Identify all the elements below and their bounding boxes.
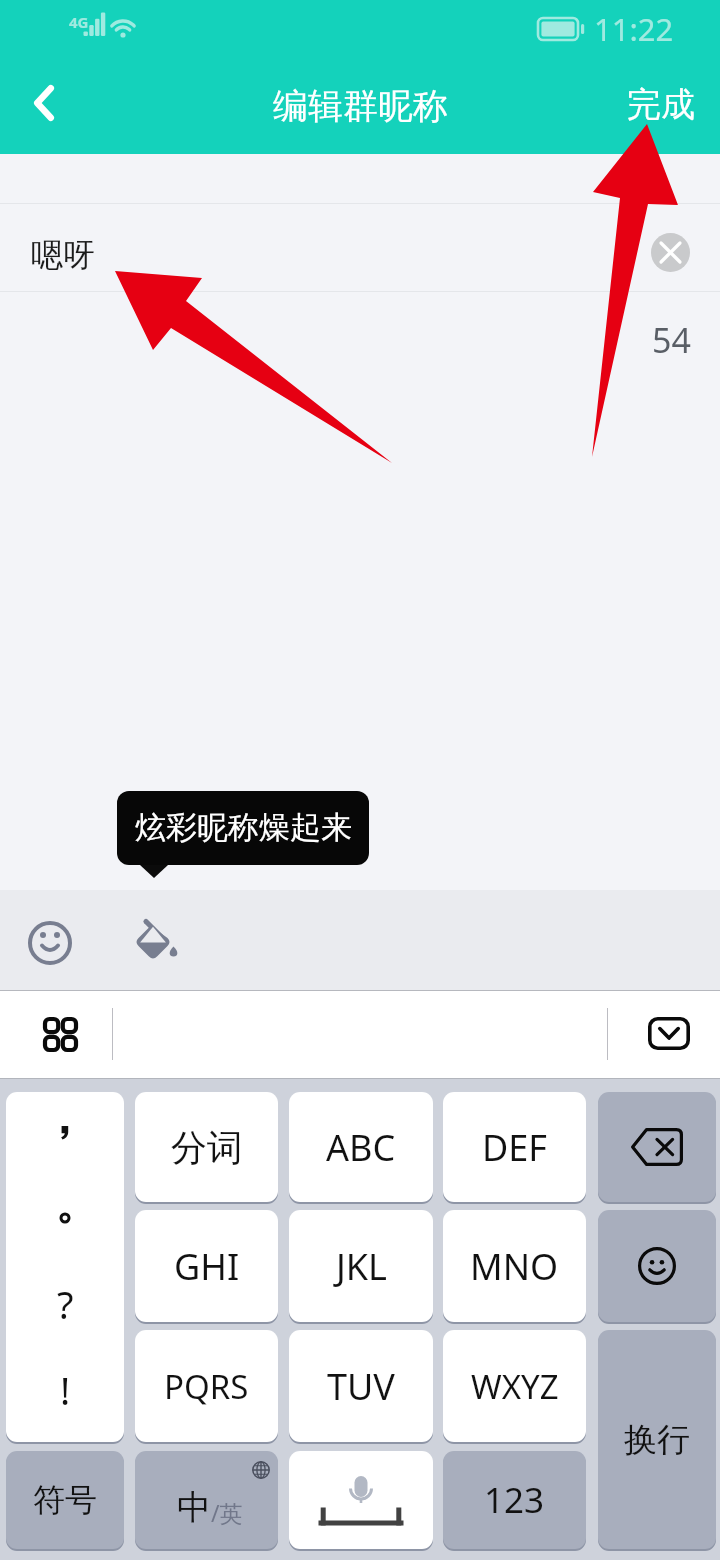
staticText: 换行 — [624, 1419, 690, 1461]
button[interactable]: 炫彩昵称燥起来 — [117, 791, 369, 865]
button[interactable]: 123 — [443, 1451, 586, 1549]
button[interactable]: Clear text — [651, 233, 690, 272]
button[interactable]: Keyboard layout — [33, 1010, 87, 1058]
button[interactable]: Emoji — [12, 890, 88, 990]
staticText: GHI — [174, 1242, 240, 1291]
staticText: ! — [60, 1364, 71, 1416]
staticText: 编辑群昵称 — [273, 84, 448, 128]
staticText: 4G — [69, 12, 89, 32]
staticText: 嗯呀 — [31, 235, 95, 275]
staticText: 完成 — [627, 83, 695, 126]
staticText: /英 — [211, 1497, 243, 1528]
button[interactable]: ABC — [289, 1092, 433, 1202]
button[interactable]: 换行 — [598, 1330, 716, 1549]
staticText: 符号 — [33, 1480, 97, 1520]
button[interactable]: Hide keyboard — [648, 1017, 690, 1050]
staticText: 分词 — [171, 1125, 243, 1170]
button[interactable] — [598, 1092, 716, 1202]
staticText: TUV — [327, 1362, 395, 1411]
staticText: 11:22 — [594, 8, 674, 50]
staticText: ? — [57, 1278, 74, 1330]
staticText: 中 — [177, 1486, 211, 1529]
button[interactable]: 完成 — [602, 60, 720, 154]
button[interactable]: JKL — [289, 1210, 433, 1322]
button[interactable]: PQRS — [135, 1330, 278, 1442]
button[interactable] — [289, 1451, 433, 1549]
button[interactable]: 分词 — [135, 1092, 278, 1202]
staticText: 炫彩昵称燥起来 — [135, 808, 352, 847]
staticText: 123 — [484, 1476, 545, 1524]
staticText: DEF — [482, 1123, 547, 1172]
staticText: WXYZ — [471, 1364, 559, 1409]
button[interactable]: ? — [6, 1092, 124, 1442]
staticText: PQRS — [164, 1364, 249, 1409]
staticText: ABC — [326, 1123, 396, 1172]
button[interactable]: WXYZ — [443, 1330, 586, 1442]
button[interactable]: 嗯呀 — [0, 204, 720, 291]
button[interactable]: GHI — [135, 1210, 278, 1322]
button[interactable]: 中 — [135, 1451, 278, 1549]
staticText: MNO — [470, 1242, 559, 1291]
button[interactable]: DEF — [443, 1092, 586, 1202]
staticText: 54 — [652, 317, 691, 363]
button[interactable]: 符号 — [6, 1451, 124, 1549]
staticText: JKL — [336, 1242, 387, 1291]
button[interactable]: MNO — [443, 1210, 586, 1322]
button[interactable] — [598, 1210, 716, 1322]
button[interactable]: Back — [0, 56, 88, 150]
button[interactable]: Colourful nickname — [118, 890, 194, 990]
button[interactable]: TUV — [289, 1330, 433, 1442]
